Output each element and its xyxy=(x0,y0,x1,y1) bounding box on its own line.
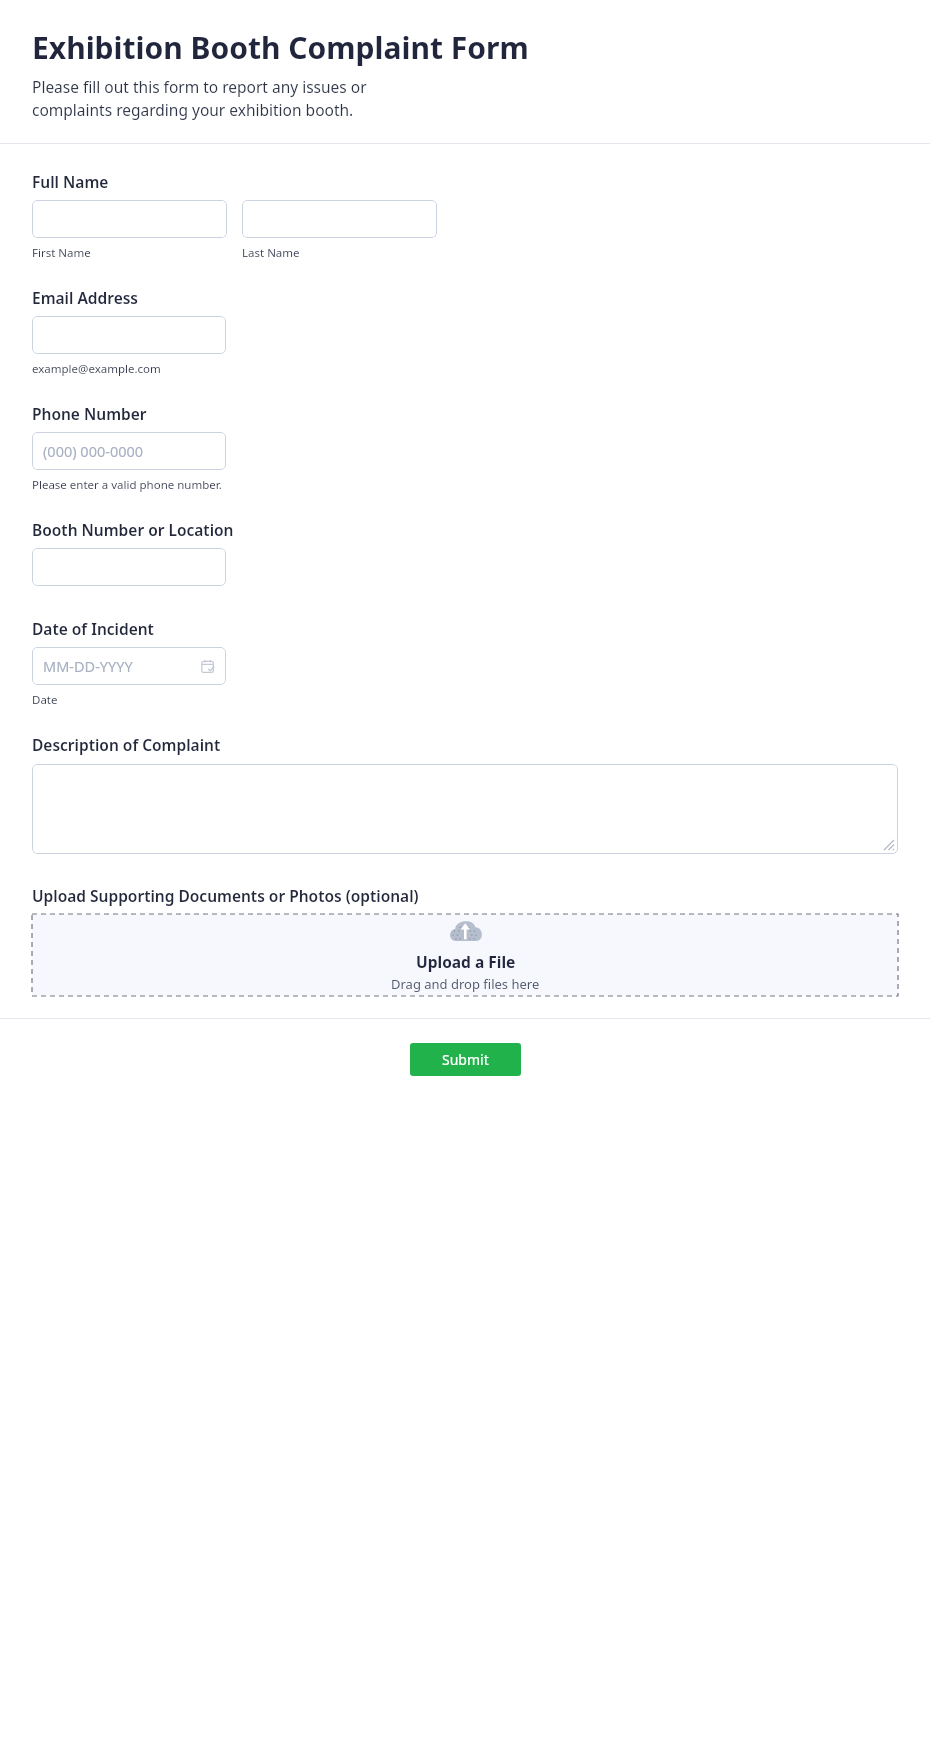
staticText: Exhibition Booth Complaint Form xyxy=(32,27,529,68)
staticText: Last Name xyxy=(242,245,300,261)
button[interactable] xyxy=(32,316,226,354)
staticText: example@example.com xyxy=(32,361,161,377)
staticText: Date xyxy=(32,692,58,708)
button[interactable] xyxy=(32,200,227,238)
staticText: Please enter a valid phone number. xyxy=(32,477,222,493)
button[interactable] xyxy=(242,200,437,238)
staticText: Please fill out this form to report any … xyxy=(32,76,432,121)
button[interactable]: Upload a File xyxy=(32,914,898,996)
button[interactable]: Submit xyxy=(410,1043,521,1076)
button[interactable]: MM-DD-YYYY xyxy=(32,647,226,685)
staticText: Drag and drop files here xyxy=(391,975,540,993)
staticText: Upload Supporting Documents or Photos (o… xyxy=(32,885,419,906)
staticText: Upload a File xyxy=(416,951,516,972)
button[interactable]: (000) 000-0000 xyxy=(32,432,226,470)
staticText: Description of Complaint xyxy=(32,734,221,755)
staticText: Date of Incident xyxy=(32,618,154,639)
button[interactable] xyxy=(32,548,226,586)
staticText: Email Address xyxy=(32,287,138,308)
staticText: Full Name xyxy=(32,171,109,192)
staticText: Submit xyxy=(442,1050,489,1069)
staticText: (000) 000-0000 xyxy=(43,441,144,461)
staticText: Booth Number or Location xyxy=(32,519,234,540)
staticText: MM-DD-YYYY xyxy=(43,656,133,676)
button[interactable] xyxy=(32,764,898,854)
staticText: First Name xyxy=(32,245,91,261)
staticText: Phone Number xyxy=(32,403,147,424)
